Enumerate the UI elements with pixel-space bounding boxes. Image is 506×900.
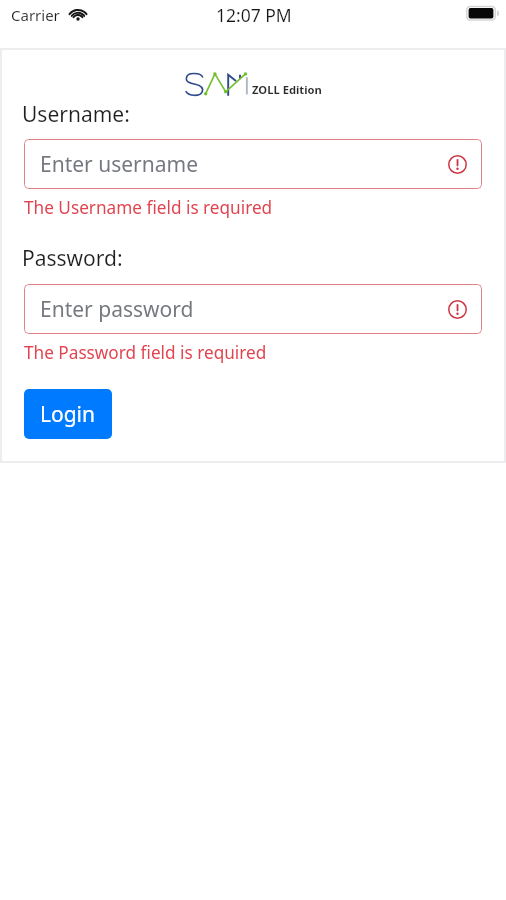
staticText: Carrier	[11, 5, 60, 25]
other: Battery full	[466, 5, 500, 21]
staticText: Enter username	[40, 150, 199, 179]
staticText: Login	[40, 400, 96, 429]
staticText: 12:07 PM	[216, 3, 292, 27]
staticText: ZOLL Edition	[252, 82, 322, 97]
staticText: The Username field is required	[24, 196, 273, 219]
staticText: Enter password	[40, 295, 194, 324]
button[interactable]: Enter username	[24, 139, 482, 189]
button[interactable]: Login	[24, 389, 112, 439]
other: Wi-Fi signal	[67, 8, 89, 21]
staticText: Password:	[22, 244, 123, 273]
staticText: The Password field is required	[24, 341, 267, 364]
button[interactable]: Enter password	[24, 284, 482, 334]
staticText: Username:	[22, 100, 130, 129]
